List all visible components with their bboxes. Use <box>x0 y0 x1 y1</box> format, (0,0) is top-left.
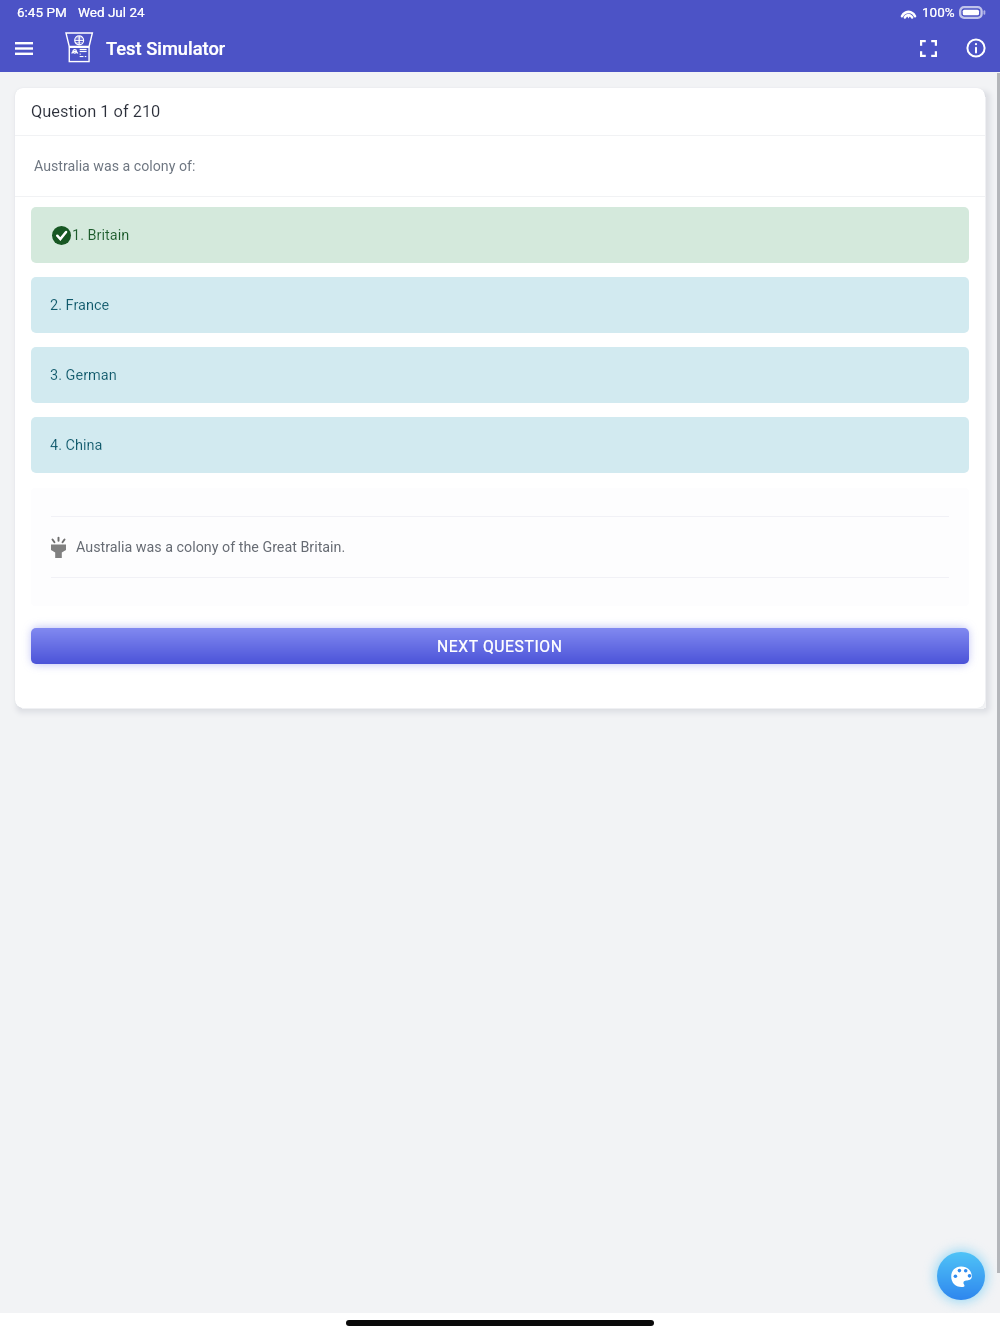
button[interactable]: 2. France <box>31 277 969 333</box>
staticText: 1. Britain <box>72 227 130 244</box>
staticText: Australia was a colony of: <box>34 158 196 175</box>
staticText: 100% <box>922 4 955 20</box>
staticText: Test Simulator <box>106 38 226 59</box>
staticText: Australia was a colony of the Great Brit… <box>76 539 346 556</box>
button[interactable]: Menu <box>0 24 48 72</box>
button[interactable]: Info <box>952 24 1000 72</box>
button[interactable]: 1. Britain <box>31 207 969 263</box>
staticText: NEXT QUESTION <box>437 637 563 655</box>
button[interactable]: 3. German <box>31 347 969 403</box>
button[interactable]: NEXT QUESTION <box>31 628 969 664</box>
button[interactable]: 4. China <box>31 417 969 473</box>
staticText: 2. France <box>50 297 110 314</box>
staticText: 4. China <box>50 437 103 454</box>
staticText: Question 1 of 210 <box>31 102 161 121</box>
button[interactable]: Fullscreen <box>904 24 952 72</box>
staticText: Wed Jul 24 <box>78 4 145 20</box>
staticText: 3. German <box>50 367 117 384</box>
staticText: 6:45 PM <box>17 4 67 20</box>
button[interactable]: Change theme <box>937 1252 985 1300</box>
